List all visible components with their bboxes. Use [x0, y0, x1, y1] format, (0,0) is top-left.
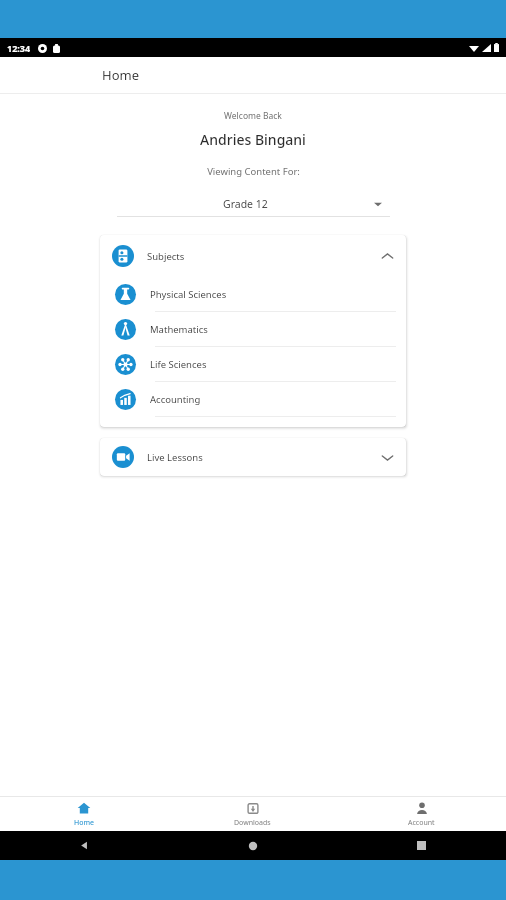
button[interactable]: Physical Sciences [100, 277, 406, 311]
button[interactable]: Downloads [168, 797, 337, 831]
button[interactable]: Mathematics [100, 312, 406, 346]
staticText: Home [102, 66, 139, 84]
staticText: Subjects [147, 250, 185, 263]
staticText: 12:34 [7, 42, 31, 54]
staticText: Andries Bingani [200, 130, 306, 149]
button[interactable]: Home [0, 797, 168, 831]
other: Back [79, 840, 90, 851]
staticText: Life Sciences [150, 358, 207, 371]
button[interactable]: Accounting [100, 382, 406, 416]
staticText: Downloads [234, 818, 271, 828]
staticText: Accounting [150, 393, 201, 406]
button[interactable]: Grade 12 [117, 192, 390, 216]
staticText: Welcome Back [224, 110, 282, 122]
staticText: Mathematics [150, 323, 208, 336]
staticText: Home [74, 818, 94, 828]
staticText: Live Lessons [147, 451, 203, 464]
button[interactable]: Account [337, 797, 506, 831]
button[interactable]: Life Sciences [100, 347, 406, 381]
other: Home [248, 841, 258, 851]
button[interactable]: Live Lessons [100, 438, 406, 476]
button[interactable]: Subjects [100, 235, 406, 277]
staticText: Account [408, 818, 435, 828]
staticText: Physical Sciences [150, 288, 227, 301]
staticText: Viewing Content For: [207, 165, 300, 178]
staticText: Grade 12 [223, 197, 268, 211]
